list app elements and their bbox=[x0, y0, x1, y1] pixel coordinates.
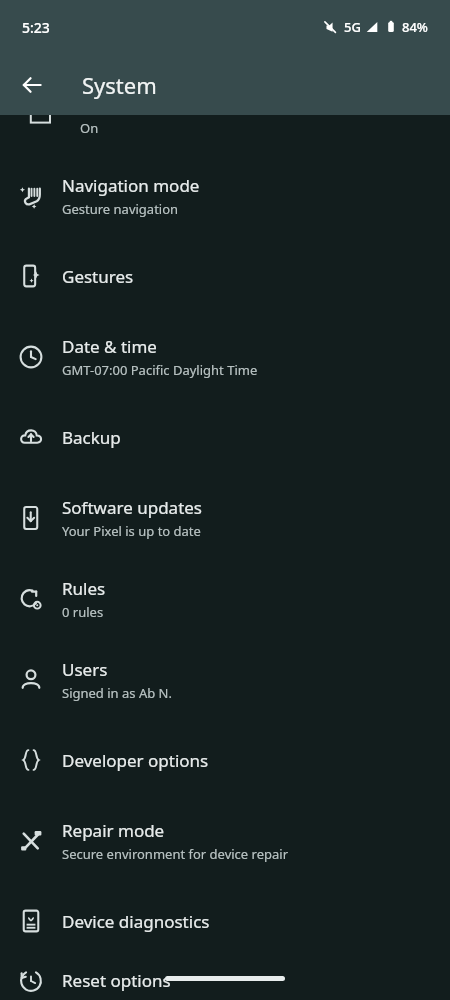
staticText: 5:23 bbox=[22, 18, 50, 37]
button[interactable]: Gestures bbox=[0, 236, 450, 316]
button[interactable]: Date & time bbox=[0, 316, 450, 397]
staticText: Gestures bbox=[62, 265, 134, 288]
staticText: GMT-07:00 Pacific Daylight Time bbox=[62, 361, 258, 379]
button[interactable]: Device diagnostics bbox=[0, 881, 450, 961]
staticText: On bbox=[80, 119, 99, 137]
staticText: Backup bbox=[62, 426, 121, 449]
staticText: Secure environment for device repair bbox=[62, 845, 289, 863]
button[interactable]: Software updates bbox=[0, 477, 450, 558]
staticText: Repair mode bbox=[62, 819, 165, 842]
staticText: Date & time bbox=[62, 335, 157, 358]
staticText: Device diagnostics bbox=[62, 910, 210, 933]
staticText: 0 rules bbox=[62, 603, 104, 621]
button[interactable]: Navigation mode bbox=[0, 155, 450, 236]
staticText: Developer options bbox=[62, 749, 209, 772]
staticText: Gesture navigation bbox=[62, 200, 179, 218]
button[interactable]: Languages bbox=[0, 115, 450, 155]
staticText: 5G bbox=[344, 18, 361, 36]
button[interactable]: Rules bbox=[0, 558, 450, 639]
staticText: Users bbox=[62, 658, 108, 681]
staticText: Reset options bbox=[62, 969, 171, 992]
staticText: Your Pixel is up to date bbox=[62, 522, 201, 540]
staticText: 84% bbox=[402, 18, 428, 36]
button[interactable]: Back bbox=[12, 65, 52, 105]
button[interactable]: Repair mode bbox=[0, 800, 450, 881]
button[interactable]: Backup bbox=[0, 397, 450, 477]
staticText: Software updates bbox=[62, 496, 203, 519]
staticText: Navigation mode bbox=[62, 174, 200, 197]
button[interactable]: Users bbox=[0, 639, 450, 720]
staticText: Signed in as Ab N. bbox=[62, 684, 172, 702]
staticText: System bbox=[82, 70, 157, 100]
button[interactable]: Developer options bbox=[0, 720, 450, 800]
staticText: Rules bbox=[62, 577, 106, 600]
other: Languages bbox=[22, 97, 62, 137]
button[interactable]: Reset options bbox=[0, 961, 450, 1000]
